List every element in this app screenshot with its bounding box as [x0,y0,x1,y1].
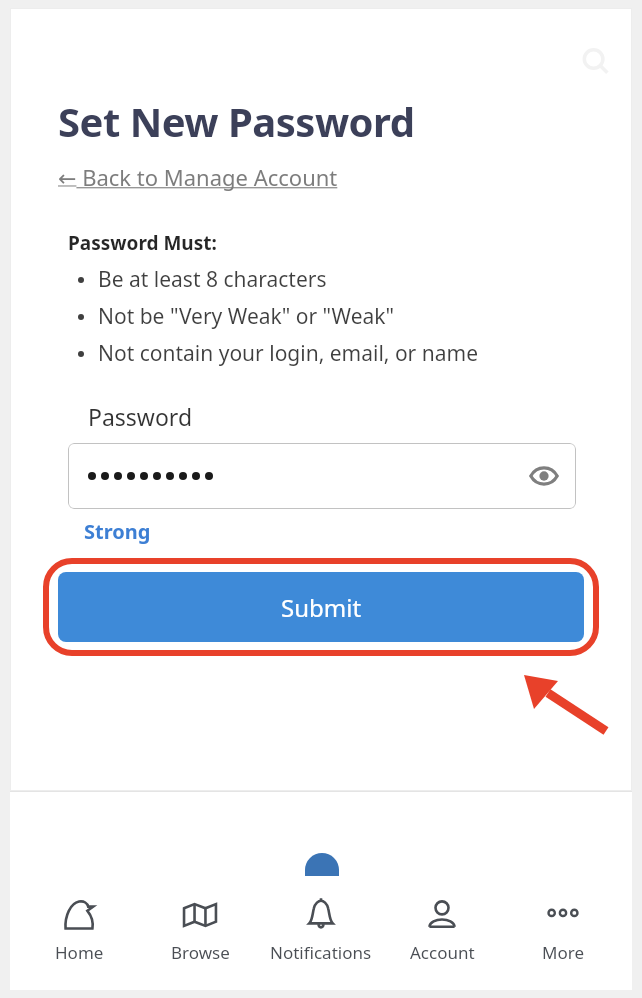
staticText: Not be "Very Weak" or "Weak" [98,302,395,331]
button[interactable]: Browse [144,892,256,966]
staticText: Set New Password [58,94,415,148]
staticText: Account [410,941,475,964]
button[interactable]: Show password [68,443,576,509]
staticText: More [542,941,584,964]
button[interactable]: Show password [526,458,562,494]
staticText: ← Back to Manage Account [58,162,338,192]
button[interactable]: Home [23,892,135,966]
staticText: Not contain your login, email, or name [98,339,478,368]
button[interactable]: More [507,892,619,966]
button[interactable]: Submit [58,572,584,642]
staticText: Password [88,401,193,432]
staticText: Home [55,941,104,964]
button[interactable]: Compose [305,853,339,887]
staticText: Password Must: [68,230,217,256]
button[interactable]: Account [386,892,498,966]
staticText: Notifications [270,941,372,964]
staticText: Browse [171,941,230,964]
button[interactable]: Notifications [265,892,377,966]
button[interactable]: ← Back to Manage Account [58,162,338,192]
staticText: Submit [281,591,362,624]
button[interactable]: Search [574,40,618,84]
staticText: Strong [84,518,151,545]
staticText: Be at least 8 characters [98,265,327,294]
